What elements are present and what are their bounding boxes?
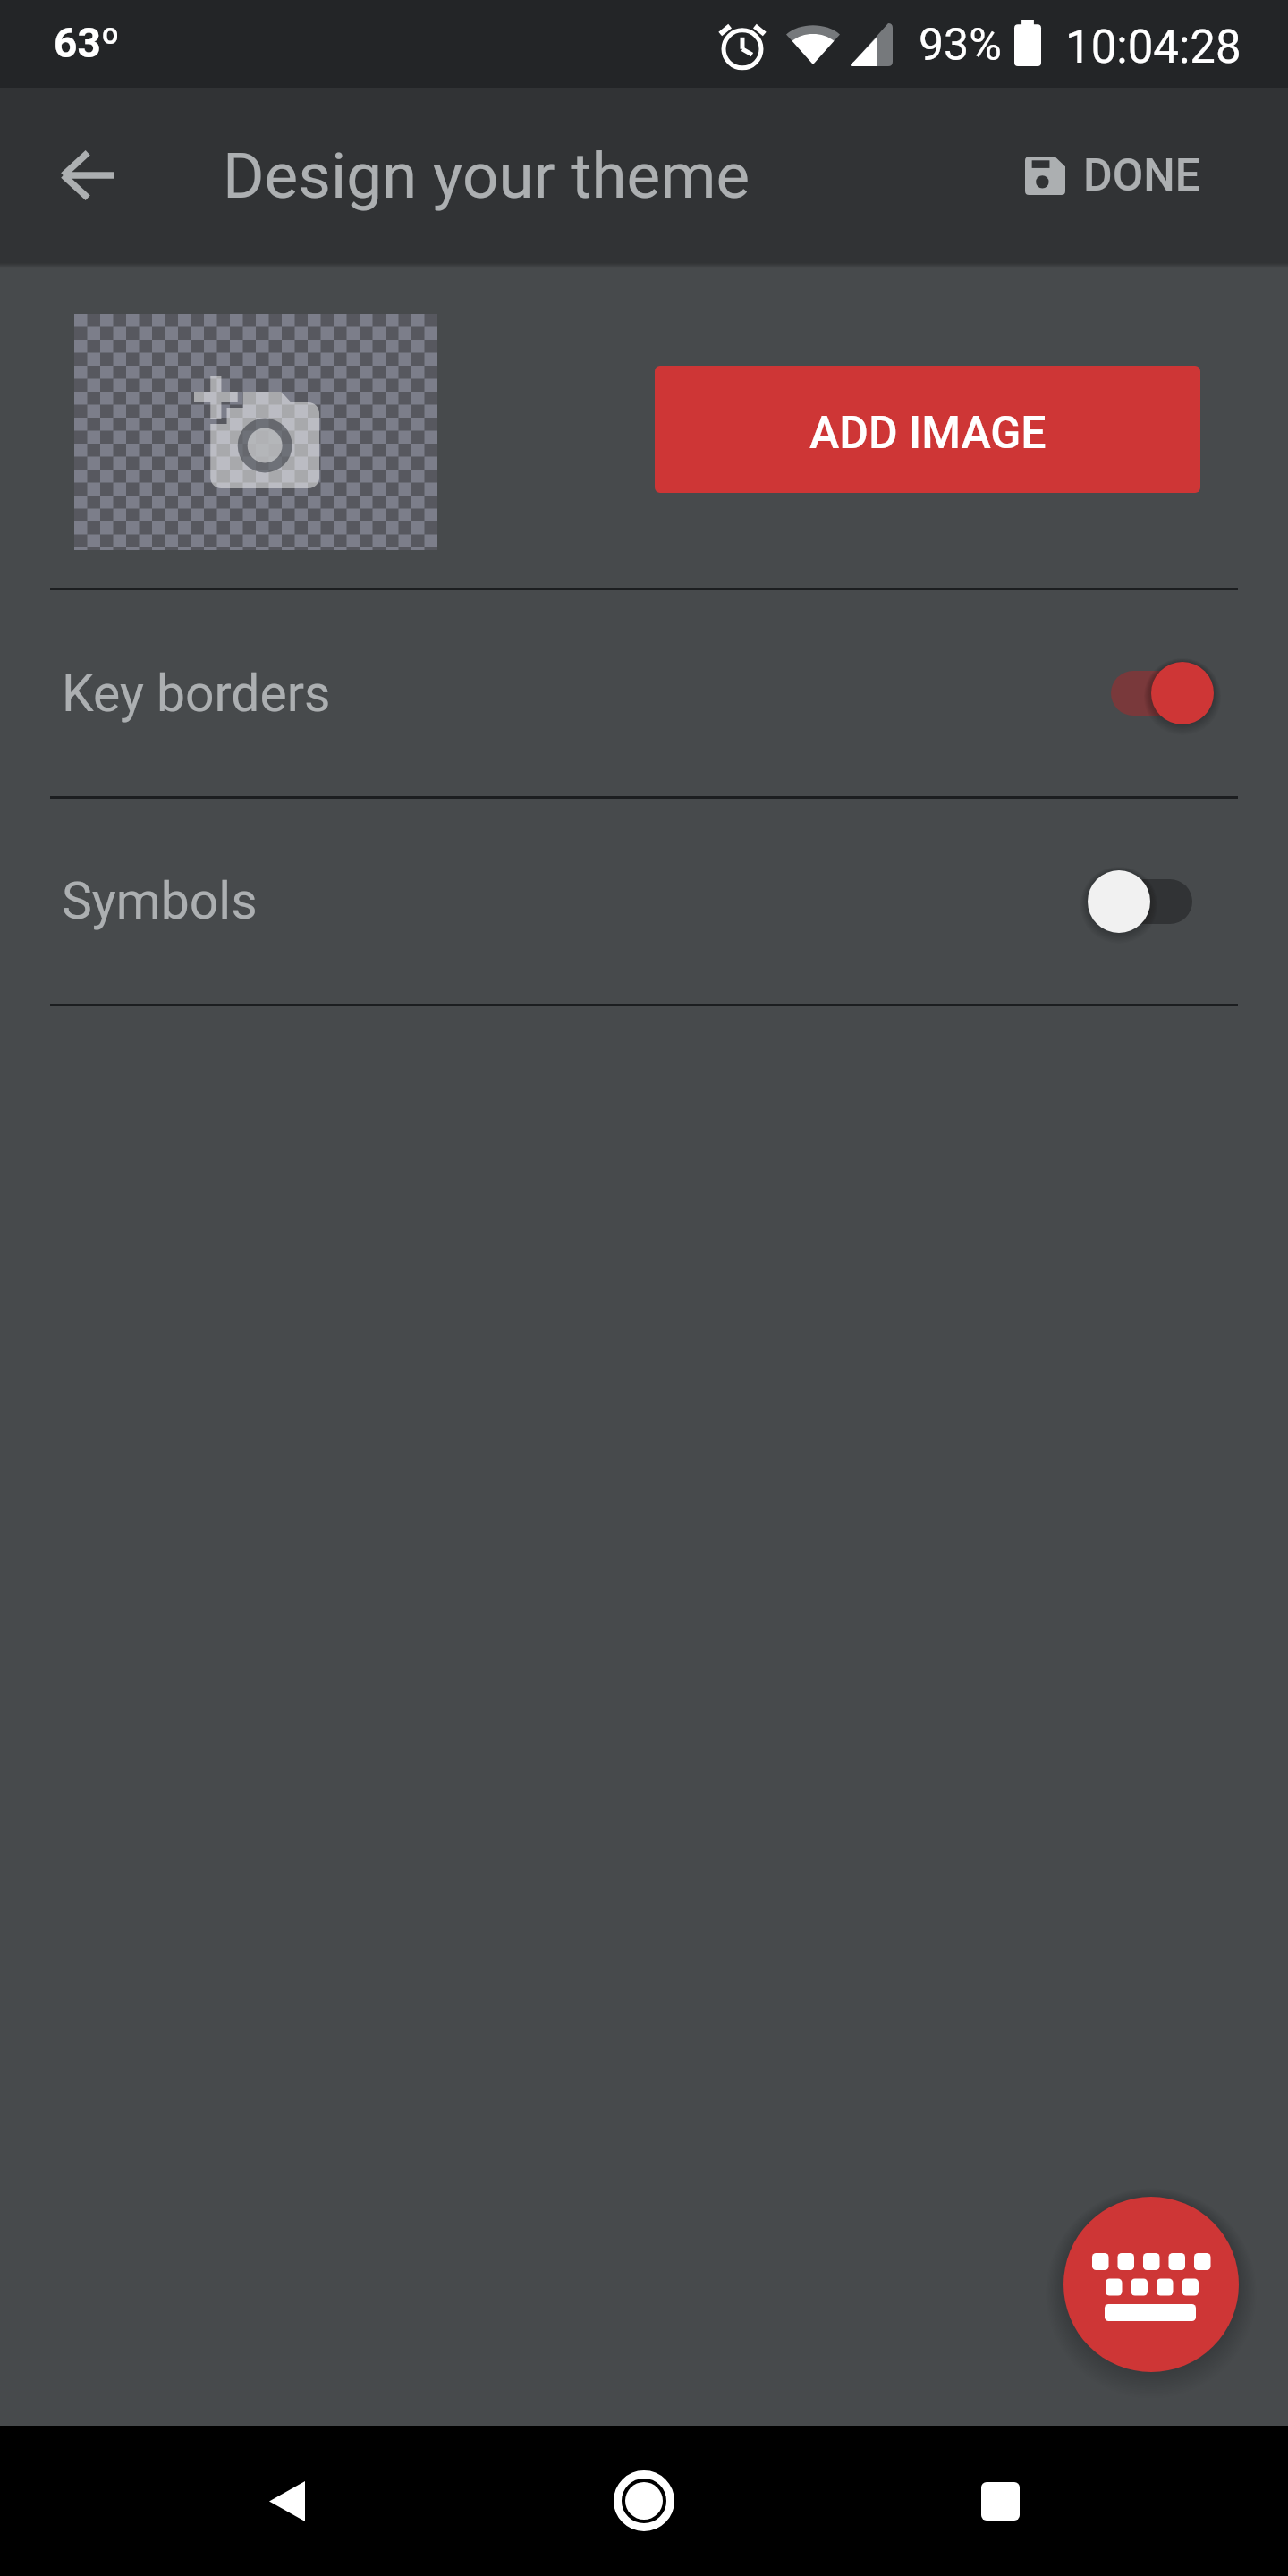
button[interactable]: Key borders — [0, 590, 1288, 796]
staticText: Key borders — [62, 664, 331, 724]
button[interactable]: ADD IMAGE — [655, 366, 1200, 493]
button[interactable]: Back — [230, 2444, 344, 2558]
staticText: Design your theme — [223, 139, 750, 213]
button[interactable]: Theme image preview — [74, 314, 437, 550]
staticText: 63º — [54, 19, 120, 67]
staticText: DONE — [1083, 149, 1200, 202]
staticText: ADD IMAGE — [809, 407, 1046, 460]
button[interactable]: Open keyboard preview — [1063, 2197, 1239, 2372]
staticText: Symbols — [62, 871, 258, 931]
staticText: 93% — [919, 19, 1002, 72]
button[interactable]: Navigate up — [30, 118, 144, 233]
staticText: 10:04:28 — [1065, 21, 1241, 74]
button[interactable]: Symbols — [0, 799, 1288, 1004]
button[interactable]: Recent apps — [943, 2444, 1057, 2558]
button[interactable]: DONE — [995, 88, 1288, 263]
button[interactable]: Home — [587, 2444, 701, 2558]
